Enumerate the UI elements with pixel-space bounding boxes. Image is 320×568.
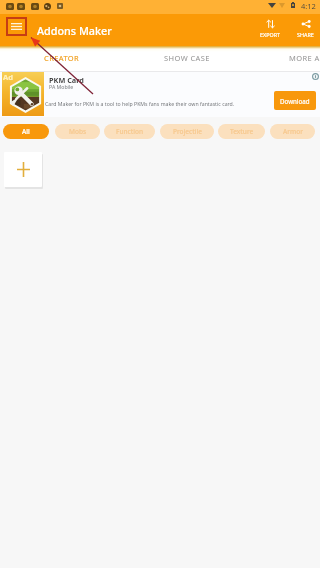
staticText: Function [116, 127, 144, 136]
button[interactable]: Texture [218, 124, 265, 139]
staticText: Ad [3, 72, 13, 82]
button[interactable]: Function [104, 124, 155, 139]
staticText: All [22, 127, 30, 136]
staticText: Addons Maker [37, 23, 112, 38]
button[interactable]: Ad information [312, 73, 319, 80]
button[interactable]: CREATOR [0, 46, 124, 70]
button[interactable]: EXPORT [256, 17, 284, 43]
button[interactable]: Open navigation menu [6, 17, 27, 36]
staticText: Card Maker for PKM is a tool to help PKM… [45, 100, 235, 107]
button[interactable]: Projectile [160, 124, 214, 139]
staticText: EXPORT [260, 31, 280, 38]
staticText: PKM Card [49, 75, 84, 85]
button[interactable]: Download [274, 91, 316, 110]
button[interactable]: SHARE [292, 17, 319, 43]
staticText: Armor [283, 127, 303, 136]
staticText: Texture [230, 127, 254, 136]
button[interactable]: Armor [270, 124, 315, 139]
staticText: SHARE [297, 31, 314, 38]
staticText: Download [280, 97, 310, 105]
button[interactable]: Mobs [55, 124, 100, 139]
button[interactable]: All [3, 124, 49, 139]
button[interactable]: MORE APPS [249, 46, 320, 70]
staticText: 4:12 [301, 1, 316, 11]
staticText: Mobs [69, 127, 87, 136]
staticText: PA Mobile [49, 83, 74, 90]
staticText: SHOW CASE [164, 53, 210, 63]
button[interactable]: Add new addon [4, 152, 42, 187]
button[interactable]: SHOW CASE [124, 46, 249, 70]
staticText: MORE APPS [289, 53, 320, 63]
staticText: Projectile [173, 127, 202, 136]
staticText: CREATOR [44, 53, 80, 63]
